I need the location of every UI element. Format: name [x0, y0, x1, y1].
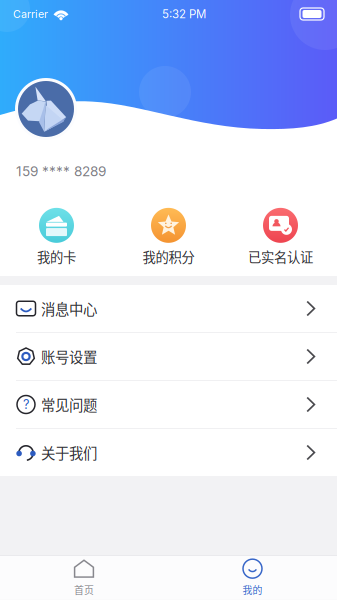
button[interactable]: 已实名认证 — [224, 201, 336, 273]
staticText: Carrier — [13, 7, 48, 20]
staticText: 首页 — [74, 583, 94, 597]
button[interactable]: ? — [0, 381, 337, 428]
button[interactable]: 我的积分 — [112, 201, 224, 273]
staticText: 我的积分 — [142, 247, 194, 266]
staticText: 消息中心 — [41, 298, 97, 319]
staticText: 我的 — [242, 583, 262, 597]
staticText: 账号设置 — [41, 346, 97, 367]
button[interactable]: 我的 — [168, 556, 337, 600]
staticText: 5:32 PM — [162, 7, 206, 21]
button[interactable]: 账号设置 — [0, 333, 337, 380]
button[interactable]: 消息中心 — [0, 285, 337, 332]
button[interactable]: 我的卡 — [0, 201, 112, 273]
staticText: 关于我们 — [41, 442, 97, 463]
staticText: 我的卡 — [37, 247, 76, 266]
button[interactable]: 首页 — [0, 556, 168, 600]
staticText: 159 **** 8289 — [16, 163, 106, 179]
staticText: 已实名认证 — [248, 247, 313, 266]
staticText: 常见问题 — [41, 394, 97, 415]
staticText: ? — [23, 397, 29, 412]
button[interactable]: 关于我们 — [0, 429, 337, 476]
